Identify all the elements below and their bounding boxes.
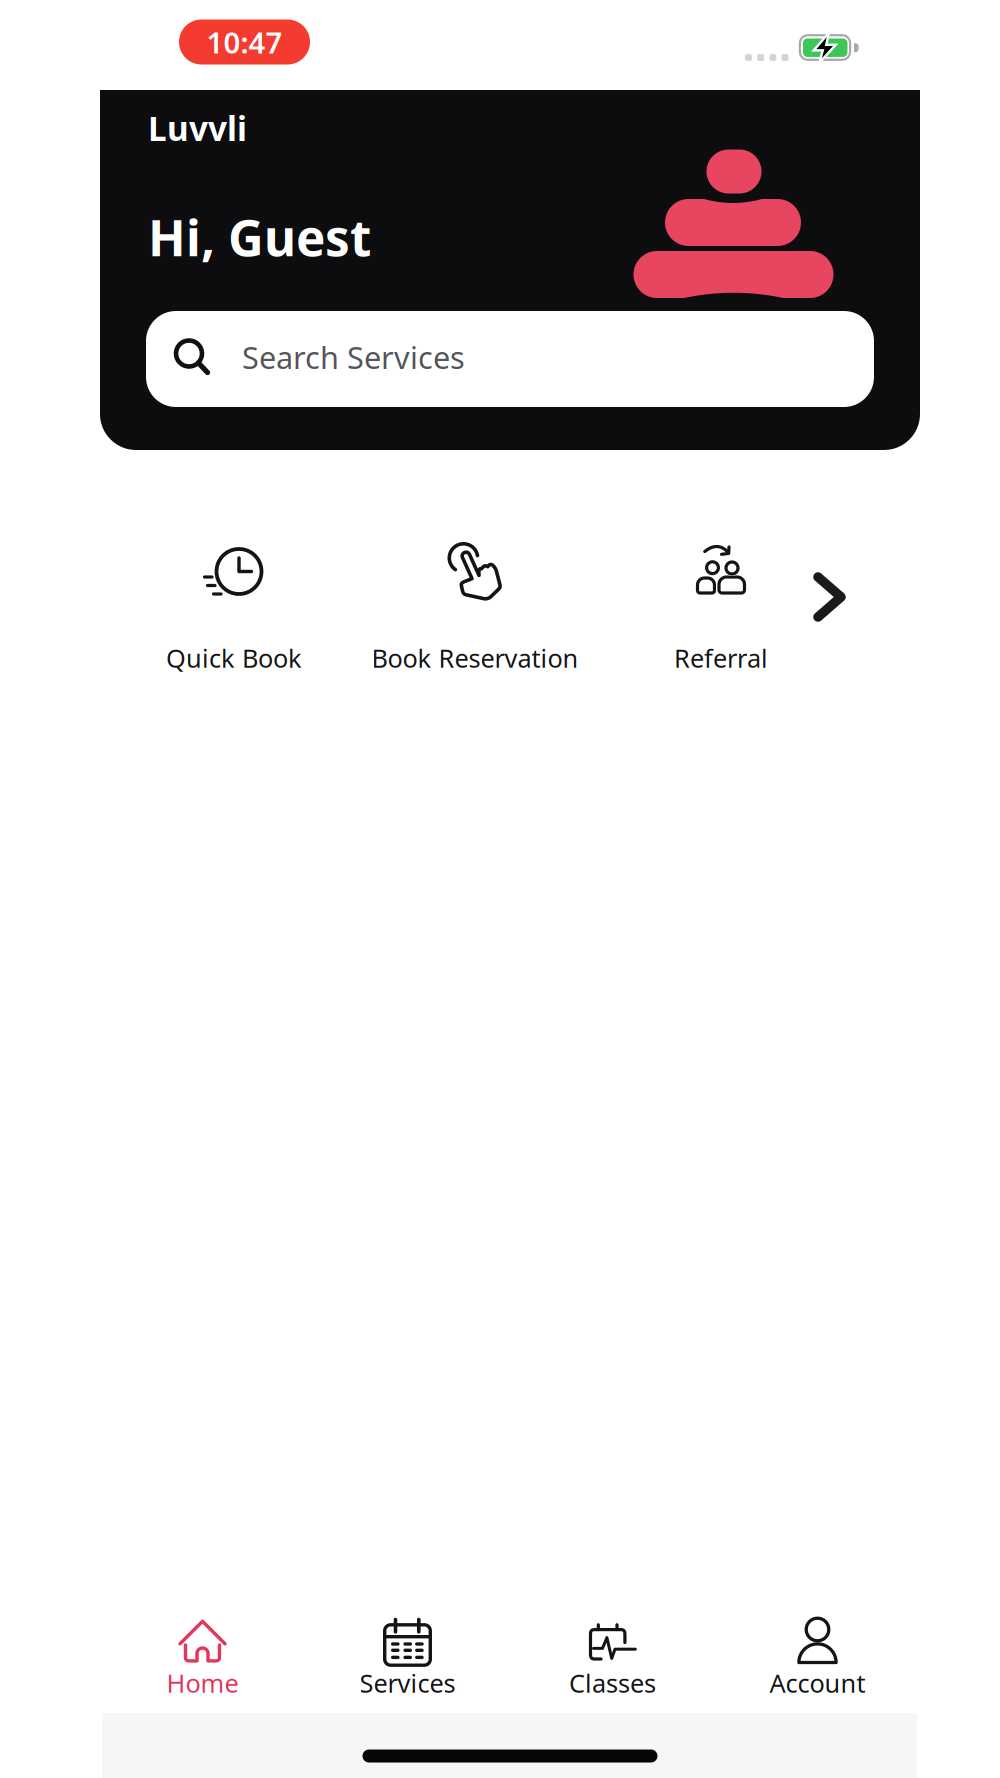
staticText: Referral	[674, 641, 768, 675]
staticText: Book Reservation	[371, 641, 578, 675]
staticText: Quick Book	[166, 641, 302, 675]
button[interactable]: Home	[100, 1605, 305, 1705]
staticText: Services	[359, 1666, 455, 1700]
button[interactable]: More	[810, 571, 850, 623]
button[interactable]: Return to call	[179, 19, 310, 64]
staticText: Search Services	[242, 337, 465, 377]
button[interactable]: Account	[715, 1605, 920, 1705]
staticText: Home	[166, 1666, 238, 1700]
staticText: 10:47	[206, 22, 282, 61]
staticText: Hi, Guest	[148, 204, 371, 270]
button[interactable]: Book Reservation	[357, 535, 593, 675]
button[interactable]: Services	[305, 1605, 510, 1705]
button[interactable]: Quick Book	[119, 535, 349, 675]
staticText: Account	[769, 1666, 865, 1700]
staticText: Classes	[569, 1666, 656, 1700]
button[interactable]: Search Services	[146, 311, 874, 407]
staticText: Luvvli	[148, 106, 247, 150]
button[interactable]: Referral	[609, 535, 833, 675]
button[interactable]: Classes	[510, 1605, 715, 1705]
